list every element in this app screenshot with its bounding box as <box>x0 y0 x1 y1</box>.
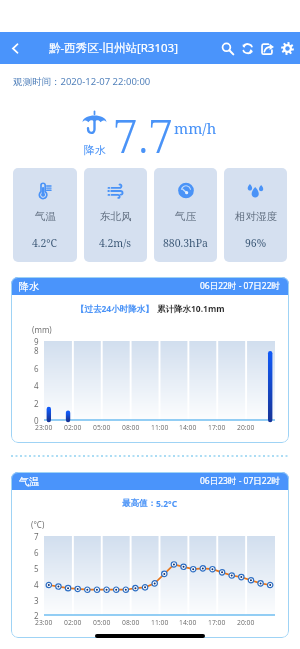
staticText: 黔-西秀区-旧州站[R3103] <box>49 40 178 56</box>
staticText: 05:00 <box>93 618 111 627</box>
staticText: 02:00 <box>64 423 82 432</box>
staticText: 14:00 <box>179 618 197 627</box>
staticText: 5 <box>34 563 39 574</box>
staticText: 7 <box>34 531 39 542</box>
staticText: 0 <box>34 415 39 426</box>
button[interactable]: 气温 <box>13 168 77 262</box>
staticText: 11:00 <box>151 423 169 432</box>
staticText: 06日23时 - 07日22时 <box>200 475 281 487</box>
staticText: 东北风 <box>100 210 132 223</box>
button[interactable]: Search <box>217 38 237 58</box>
staticText: 4.2°C <box>32 236 58 250</box>
staticText: 9 <box>34 336 39 347</box>
staticText: 05:00 <box>93 423 111 432</box>
staticText: 20:00 <box>237 618 255 627</box>
staticText: 相对湿度 <box>235 210 277 223</box>
staticText: (°C) <box>31 519 45 530</box>
button[interactable]: 气温 <box>11 472 289 638</box>
staticText: 23:00 <box>35 423 53 432</box>
staticText: 20:00 <box>237 423 255 432</box>
button[interactable]: 降水 <box>11 277 289 443</box>
staticText: 降水 <box>84 143 106 157</box>
staticText: 08:00 <box>122 618 140 627</box>
staticText: 2 <box>34 610 39 621</box>
staticText: 【过去24小时降水】 <box>76 303 154 315</box>
staticText: 4 <box>34 579 39 590</box>
staticText: 17:00 <box>208 618 226 627</box>
button[interactable]: Settings <box>277 38 297 58</box>
staticText: 7.7 <box>113 105 174 153</box>
button[interactable]: Share <box>257 38 277 58</box>
staticText: 气压 <box>175 210 196 223</box>
staticText: 17:00 <box>208 423 226 432</box>
staticText: 08:00 <box>122 423 140 432</box>
staticText: 4.2m/s <box>99 236 132 250</box>
staticText: 880.3hPa <box>163 236 209 250</box>
staticText: 气温 <box>19 475 39 488</box>
staticText: 5.2°C <box>156 498 178 510</box>
staticText: 气温 <box>35 210 56 223</box>
staticText: 降水 <box>19 280 39 293</box>
button[interactable]: 气压 <box>154 168 217 262</box>
staticText: 4 <box>34 380 39 391</box>
staticText: 最高值： <box>122 498 156 509</box>
staticText: 23:00 <box>35 618 53 627</box>
staticText: 02:00 <box>64 618 82 627</box>
staticText: 06日22时 - 07日22时 <box>200 280 281 292</box>
button[interactable]: 东北风 <box>84 168 147 262</box>
staticText: 14:00 <box>179 423 197 432</box>
button[interactable]: 相对湿度 <box>224 168 287 262</box>
button[interactable]: Back <box>3 36 27 60</box>
button[interactable]: Refresh <box>237 38 257 58</box>
staticText: 累计降水10.1mm <box>157 303 225 315</box>
staticText: 6 <box>34 547 39 558</box>
staticText: (mm) <box>32 324 52 335</box>
staticText: 3 <box>34 595 39 606</box>
staticText: 11:00 <box>151 618 169 627</box>
staticText: 观测时间：2020-12-07 22:00:00 <box>13 75 151 88</box>
staticText: 6 <box>34 363 39 374</box>
staticText: 8 <box>34 345 39 356</box>
staticText: 96% <box>245 236 267 250</box>
staticText: mm/h <box>174 118 217 138</box>
staticText: 2 <box>34 398 39 409</box>
